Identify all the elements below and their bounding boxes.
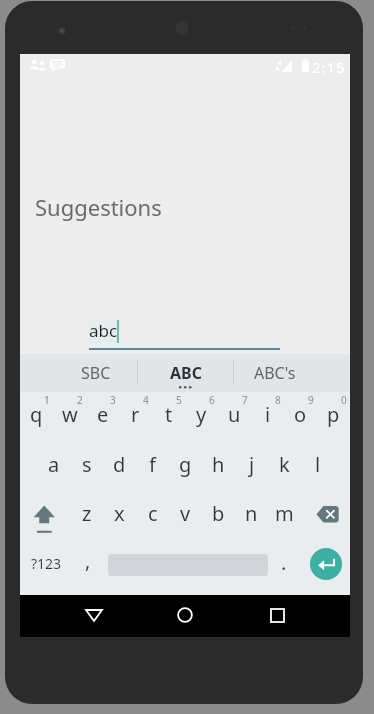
button[interactable]: k bbox=[268, 442, 301, 492]
staticText: c bbox=[148, 500, 158, 527]
button[interactable]: . bbox=[273, 540, 295, 590]
staticText: 7 bbox=[242, 393, 248, 407]
staticText: j bbox=[249, 451, 255, 478]
staticText: z bbox=[82, 500, 92, 527]
staticText: b bbox=[212, 500, 225, 527]
staticText: w bbox=[62, 401, 78, 428]
staticText: 4 bbox=[143, 393, 149, 407]
button[interactable]: e bbox=[86, 392, 119, 442]
staticText: o bbox=[294, 401, 307, 428]
button[interactable]: Enter bbox=[297, 540, 350, 590]
staticText: 0 bbox=[341, 393, 347, 407]
button[interactable]: a bbox=[37, 442, 70, 492]
button[interactable]: j bbox=[235, 442, 268, 492]
staticText: 5 bbox=[176, 393, 182, 407]
button[interactable]: ABC's bbox=[231, 354, 318, 392]
button[interactable]: Backspace bbox=[301, 491, 351, 541]
staticText: a bbox=[48, 451, 60, 478]
staticText: , bbox=[85, 547, 91, 574]
button[interactable]: , bbox=[74, 540, 103, 590]
staticText: y bbox=[196, 401, 207, 428]
button[interactable]: y bbox=[185, 392, 218, 442]
button[interactable]: m bbox=[268, 491, 301, 541]
button[interactable]: c bbox=[136, 491, 169, 541]
button[interactable]: Back bbox=[66, 594, 122, 636]
staticText: ?123 bbox=[31, 554, 62, 573]
button[interactable]: v bbox=[169, 491, 202, 541]
staticText: ABC bbox=[170, 362, 202, 384]
button[interactable]: f bbox=[136, 442, 169, 492]
button[interactable]: SBC bbox=[50, 354, 142, 392]
staticText: r bbox=[131, 401, 140, 428]
button[interactable]: s bbox=[70, 442, 103, 492]
button[interactable]: Home bbox=[157, 594, 213, 636]
button[interactable]: u bbox=[218, 392, 251, 442]
staticText: l bbox=[315, 451, 321, 478]
button[interactable]: ABC bbox=[142, 354, 230, 392]
staticText: f bbox=[149, 451, 156, 478]
button[interactable]: t bbox=[152, 392, 185, 442]
staticText: k bbox=[279, 451, 290, 478]
button[interactable]: Space bbox=[103, 540, 273, 590]
button[interactable]: n bbox=[235, 491, 268, 541]
button[interactable]: o bbox=[284, 392, 317, 442]
staticText: 6 bbox=[209, 393, 215, 407]
button[interactable]: d bbox=[103, 442, 136, 492]
staticText: 2:15 bbox=[312, 57, 346, 77]
staticText: SBC bbox=[81, 362, 111, 384]
button[interactable]: g bbox=[169, 442, 202, 492]
staticText: 1 bbox=[44, 393, 50, 407]
staticText: g bbox=[179, 451, 192, 478]
staticText: p bbox=[327, 401, 340, 428]
staticText: 2 bbox=[77, 393, 83, 407]
staticText: Suggestions bbox=[35, 192, 162, 222]
other: Messages bbox=[50, 59, 65, 71]
staticText: v bbox=[180, 500, 191, 527]
button[interactable]: b bbox=[202, 491, 235, 541]
staticText: q bbox=[30, 401, 43, 428]
button[interactable]: x bbox=[103, 491, 136, 541]
staticText: d bbox=[113, 451, 126, 478]
staticText: . bbox=[281, 549, 287, 576]
staticText: x bbox=[114, 500, 125, 527]
staticText: 9 bbox=[308, 393, 314, 407]
button[interactable]: i bbox=[251, 392, 284, 442]
button[interactable]: z bbox=[70, 491, 103, 541]
staticText: ABC's bbox=[254, 362, 296, 384]
button[interactable]: l bbox=[301, 442, 334, 492]
button[interactable]: q bbox=[20, 392, 53, 442]
staticText: 8 bbox=[275, 393, 281, 407]
staticText: s bbox=[82, 451, 92, 478]
staticText: e bbox=[97, 401, 109, 428]
button[interactable]: p bbox=[317, 392, 350, 442]
staticText: 3 bbox=[110, 393, 116, 407]
button[interactable]: h bbox=[202, 442, 235, 492]
staticText: h bbox=[212, 451, 225, 478]
staticText: t bbox=[165, 401, 173, 428]
staticText: u bbox=[228, 401, 241, 428]
button[interactable]: ?123 bbox=[20, 540, 72, 590]
staticText: n bbox=[245, 500, 258, 527]
other: Contacts bbox=[29, 59, 46, 71]
staticText: m bbox=[275, 500, 294, 527]
button[interactable]: Shift bbox=[20, 491, 70, 541]
button[interactable]: r bbox=[119, 392, 152, 442]
staticText: abc bbox=[89, 319, 118, 342]
staticText: i bbox=[265, 401, 271, 428]
button[interactable]: Recents bbox=[249, 594, 305, 636]
button[interactable]: w bbox=[53, 392, 86, 442]
